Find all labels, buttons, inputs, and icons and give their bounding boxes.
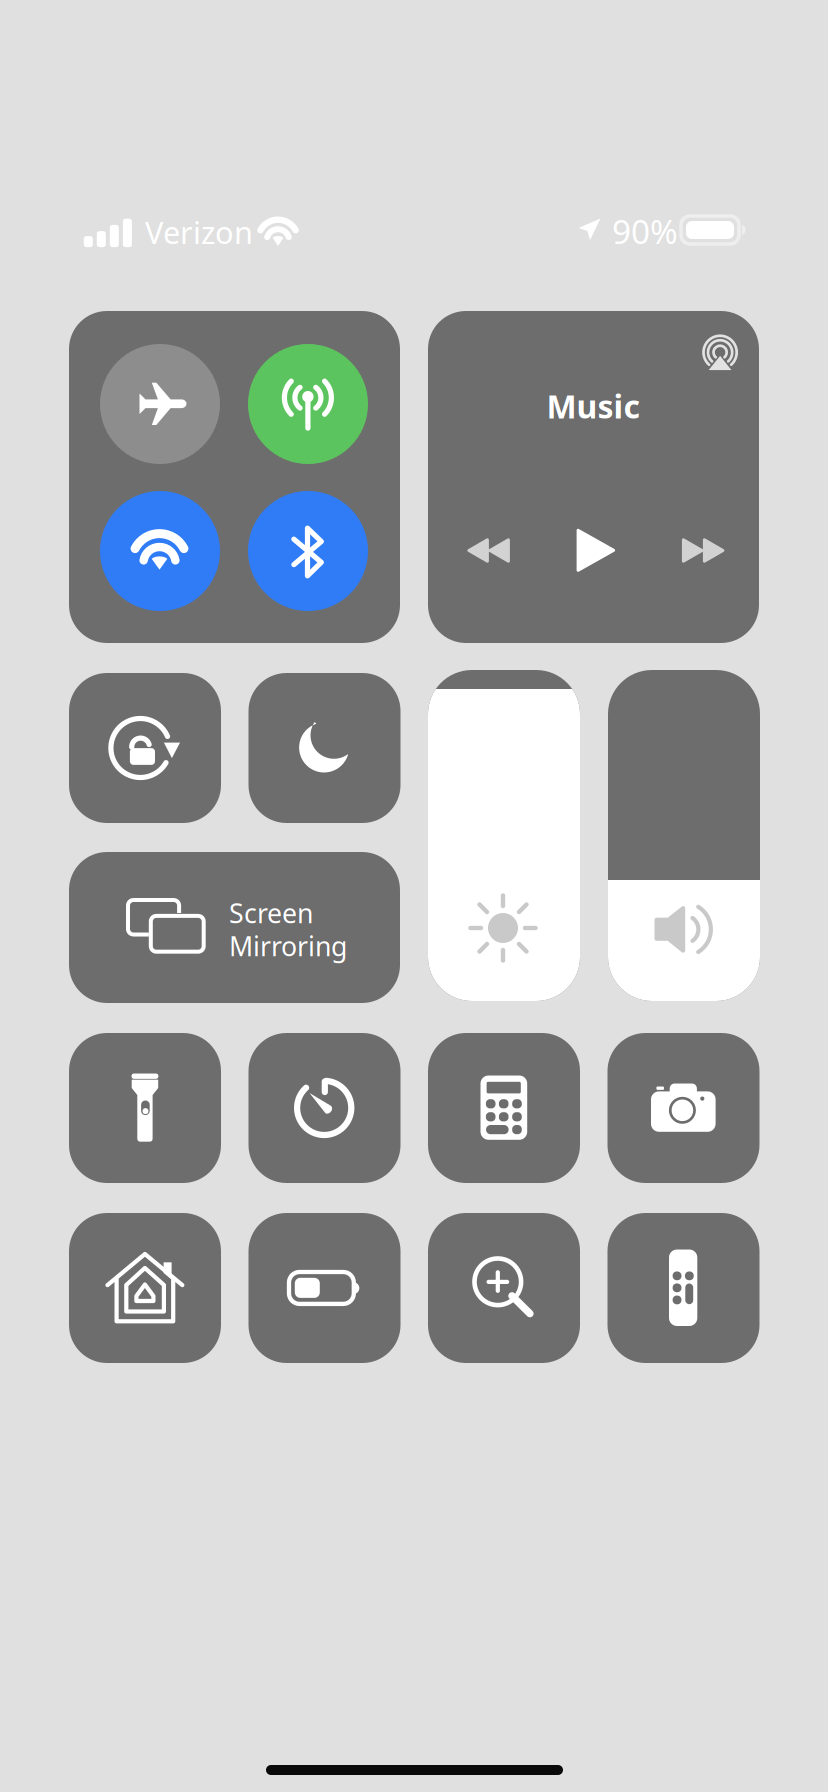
staticText: Verizon — [145, 212, 253, 252]
staticText: Music — [546, 385, 640, 427]
button[interactable]: Previous Track — [467, 538, 510, 563]
button[interactable] — [69, 1213, 221, 1363]
button[interactable] — [248, 673, 400, 823]
button[interactable] — [428, 1033, 580, 1183]
button[interactable]: Play — [577, 529, 616, 572]
button[interactable] — [248, 1033, 400, 1183]
button[interactable] — [69, 1033, 221, 1183]
staticText: Screen — [229, 895, 313, 931]
button[interactable]: Next Track — [681, 538, 724, 563]
button[interactable]: AirPlay — [701, 334, 739, 372]
staticText: 90% — [612, 209, 678, 253]
button[interactable]: Bluetooth — [248, 491, 368, 611]
button[interactable]: Cellular Data — [248, 344, 368, 464]
button[interactable]: Volume — [608, 670, 760, 1001]
button[interactable]: Wi-Fi — [100, 491, 220, 611]
button[interactable] — [607, 1213, 759, 1363]
staticText: Mirroring — [229, 928, 347, 964]
button[interactable] — [428, 1213, 580, 1363]
button[interactable]: Airplane Mode — [100, 344, 220, 464]
button[interactable] — [607, 1033, 759, 1183]
button[interactable] — [69, 673, 221, 823]
button[interactable]: Screen — [69, 852, 400, 1003]
button[interactable]: Brightness — [428, 670, 580, 1001]
button[interactable] — [248, 1213, 400, 1363]
